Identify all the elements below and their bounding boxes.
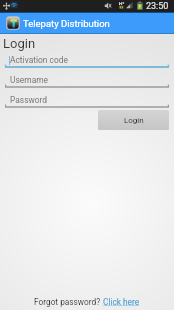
button[interactable]: Password [5, 95, 169, 109]
staticText: Forgot password? [34, 297, 103, 307]
other: App icon [6, 16, 20, 30]
staticText: Username [10, 75, 49, 85]
staticText: Password [10, 95, 48, 105]
button[interactable]: Activation code [5, 55, 169, 69]
button[interactable]: Username [5, 75, 169, 89]
staticText: Activation code [10, 55, 68, 65]
staticText: Login [124, 116, 144, 125]
staticText: Login [3, 36, 36, 51]
button[interactable]: Login [98, 110, 169, 130]
button[interactable]: Click here [103, 297, 140, 307]
staticText: Telepaty Distribution [23, 18, 110, 29]
staticText: 23:50 [146, 1, 169, 12]
